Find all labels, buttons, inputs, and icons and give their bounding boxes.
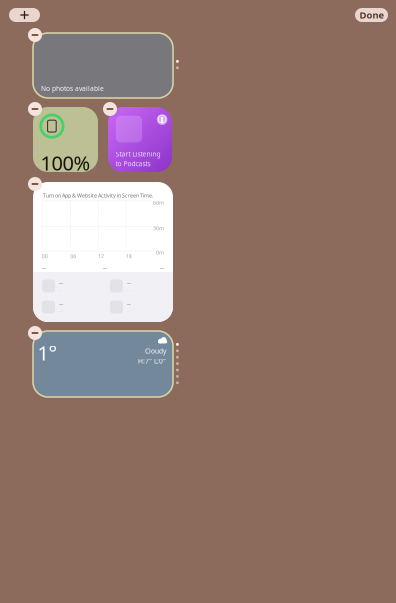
staticText: 30m xyxy=(153,225,164,232)
staticText: Done xyxy=(359,9,383,21)
button[interactable]: Remove widget xyxy=(28,326,42,340)
button[interactable]: Remove widget xyxy=(28,102,42,116)
staticText: -- xyxy=(59,278,63,287)
staticText: 12 xyxy=(98,253,104,260)
staticText: No photos available xyxy=(41,84,104,93)
staticText: 06 xyxy=(70,253,76,260)
staticText: -- xyxy=(42,263,46,272)
button[interactable]: Podcasts widget xyxy=(108,107,172,172)
staticText: -- xyxy=(59,299,63,308)
button[interactable]: Photos widget xyxy=(33,33,173,98)
button[interactable]: Remove widget xyxy=(28,28,42,42)
staticText: Start Listening xyxy=(115,149,160,158)
button[interactable]: Add widget xyxy=(9,8,40,22)
staticText: 00 xyxy=(42,253,48,260)
staticText: 100% xyxy=(40,149,90,176)
button[interactable]: Done xyxy=(355,8,388,22)
button[interactable]: Remove widget xyxy=(28,177,42,191)
staticText: 18 xyxy=(126,253,132,260)
staticText: -- xyxy=(160,263,164,272)
staticText: 1° xyxy=(37,339,57,366)
button[interactable]: Weather widget xyxy=(33,331,173,397)
staticText: Turn on App & Website Activity in Screen… xyxy=(43,192,153,199)
button[interactable]: Screen Time widget xyxy=(33,107,98,172)
button[interactable]: Remove widget xyxy=(103,102,117,116)
staticText: -- xyxy=(127,278,131,287)
staticText: H:7° L:0° xyxy=(138,357,166,365)
staticText: 60m xyxy=(153,199,164,206)
button[interactable]: Screen Time report widget xyxy=(33,182,173,322)
staticText: -- xyxy=(103,263,107,272)
staticText: 0m xyxy=(156,249,164,256)
staticText: -- xyxy=(127,299,131,308)
staticText: to Podcasts xyxy=(115,159,150,168)
staticText: Cloudy xyxy=(145,346,166,355)
